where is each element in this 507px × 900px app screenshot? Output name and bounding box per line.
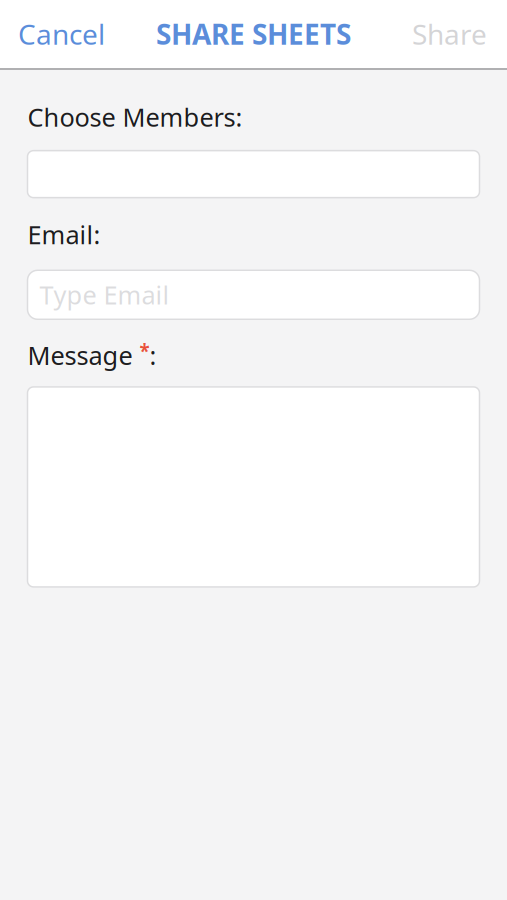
staticText: Message [27, 338, 139, 372]
staticText: Cancel [18, 15, 105, 53]
button[interactable]: Share [392, 0, 507, 68]
button[interactable]: Cancel [0, 0, 123, 68]
button[interactable] [27, 151, 479, 198]
button[interactable]: Type Email [27, 270, 479, 319]
staticText: Email: [27, 218, 100, 251]
staticText: SHARE SHEETS [156, 15, 351, 53]
staticText: Type Email [39, 278, 169, 312]
button[interactable] [27, 387, 479, 587]
staticText: Share [412, 15, 487, 53]
staticText: Choose Members: [27, 100, 242, 134]
staticText: : [149, 338, 156, 372]
staticText: * [139, 338, 149, 363]
